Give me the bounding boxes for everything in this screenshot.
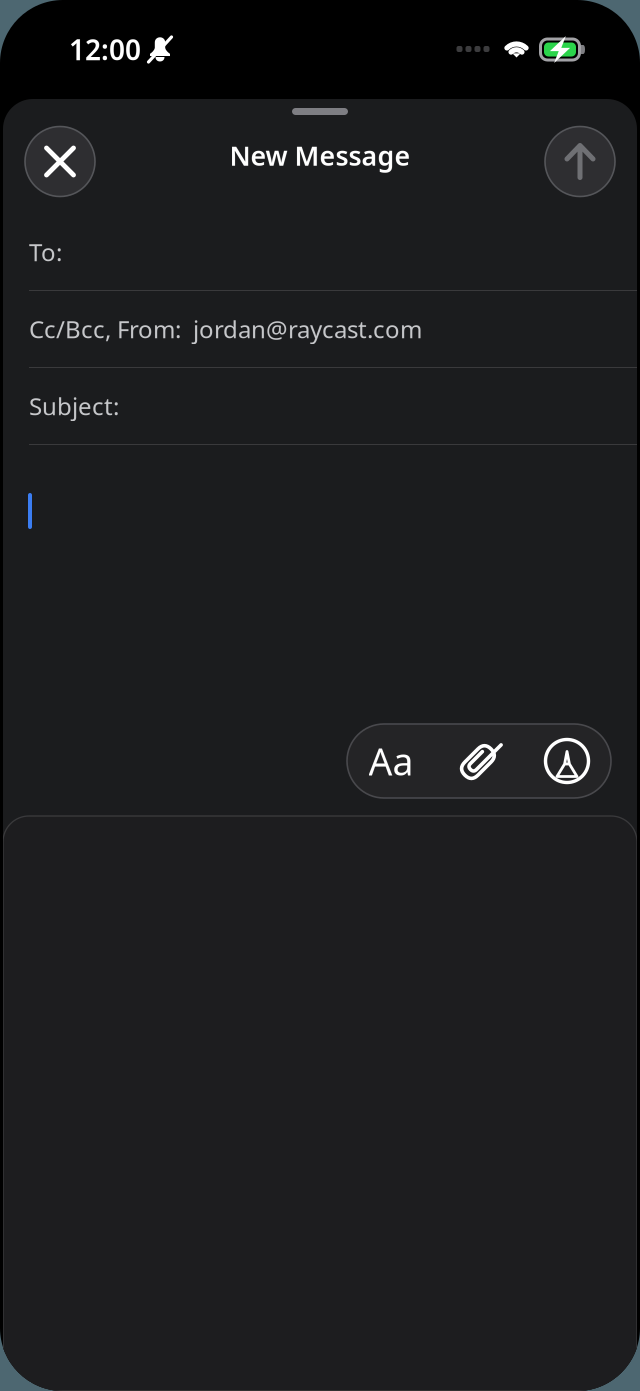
button[interactable]: Send [545, 126, 615, 196]
button[interactable]: Markup [523, 724, 611, 798]
button[interactable]: Attach file [435, 724, 523, 798]
staticText: To: [29, 236, 62, 268]
staticText: New Message [229, 138, 410, 173]
staticText: Subject: [29, 390, 119, 422]
button[interactable]: Text formatting [347, 724, 435, 798]
staticText: 12:00 [69, 31, 141, 68]
staticText: Cc/Bcc, From: jordan@raycast.com [29, 313, 422, 345]
button[interactable]: Close [25, 126, 95, 196]
staticText: Aa [368, 736, 413, 786]
